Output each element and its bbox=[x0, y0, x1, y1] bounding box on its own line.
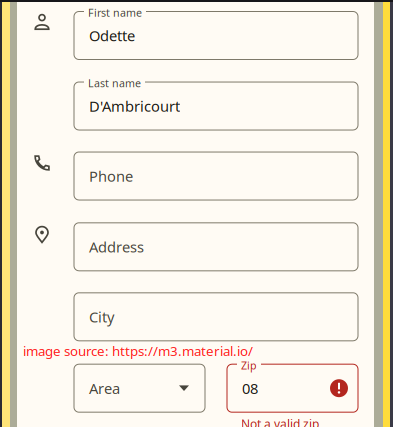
staticText: image source: https://m3.material.io/ bbox=[23, 342, 253, 360]
button[interactable]: Address bbox=[74, 223, 358, 271]
button[interactable]: Area bbox=[74, 364, 205, 412]
staticText: Zip bbox=[241, 358, 257, 372]
staticText: Address bbox=[89, 237, 144, 257]
staticText: Odette bbox=[89, 26, 135, 45]
button[interactable]: D'Ambricourt bbox=[74, 82, 358, 130]
staticText: Area bbox=[89, 378, 120, 398]
staticText: D'Ambricourt bbox=[89, 96, 180, 116]
button[interactable]: Phone bbox=[74, 152, 358, 200]
button[interactable]: Odette bbox=[74, 11, 358, 59]
staticText: City bbox=[89, 307, 114, 327]
staticText: Not a valid zip bbox=[241, 416, 319, 427]
staticText: Phone bbox=[89, 166, 133, 186]
staticText: Last name bbox=[88, 76, 141, 90]
staticText: First name bbox=[88, 5, 142, 20]
button[interactable]: City bbox=[74, 293, 358, 341]
staticText: 08 bbox=[242, 378, 258, 398]
button[interactable]: 08 bbox=[227, 364, 358, 412]
